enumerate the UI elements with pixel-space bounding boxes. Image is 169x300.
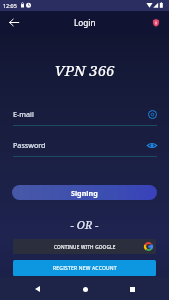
button[interactable]: REGISTER NEW ACCOUNT xyxy=(13,260,156,276)
button[interactable]: VPN status xyxy=(147,14,164,31)
button[interactable]: Password xyxy=(13,139,157,157)
button[interactable]: CONTINUE WITH GOOGLE xyxy=(13,239,156,254)
staticText: Password xyxy=(13,140,46,150)
staticText: Login xyxy=(74,17,96,28)
button[interactable]: E-mail xyxy=(13,108,157,126)
staticText: - OR - xyxy=(0,217,169,232)
button[interactable]: Signing xyxy=(12,185,157,200)
button[interactable]: Recent apps xyxy=(121,278,143,300)
staticText: E-mail xyxy=(13,109,34,119)
staticText: CONTINUE WITH GOOGLE xyxy=(54,244,116,250)
button[interactable]: Back xyxy=(26,278,48,300)
staticText: Signing xyxy=(71,188,98,198)
staticText: 12:05 xyxy=(3,2,17,9)
staticText: REGISTER NEW ACCOUNT xyxy=(53,265,117,272)
button[interactable]: Home xyxy=(74,278,96,300)
staticText: VPN 366 xyxy=(0,60,169,80)
button[interactable]: Back xyxy=(3,12,24,33)
